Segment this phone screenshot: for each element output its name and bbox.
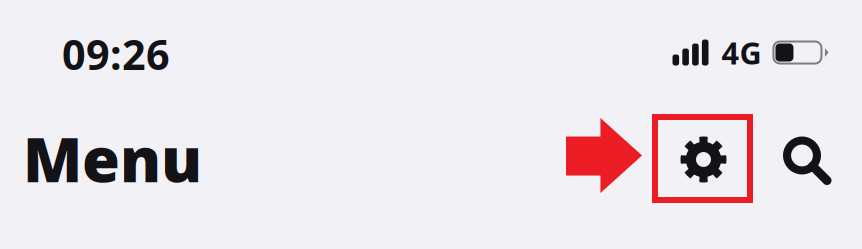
staticText: 4G [721,32,761,73]
button[interactable]: Settings [652,114,753,203]
staticText: Menu [23,118,202,199]
button[interactable]: Search [776,130,838,192]
staticText: 09:26 [62,27,170,81]
